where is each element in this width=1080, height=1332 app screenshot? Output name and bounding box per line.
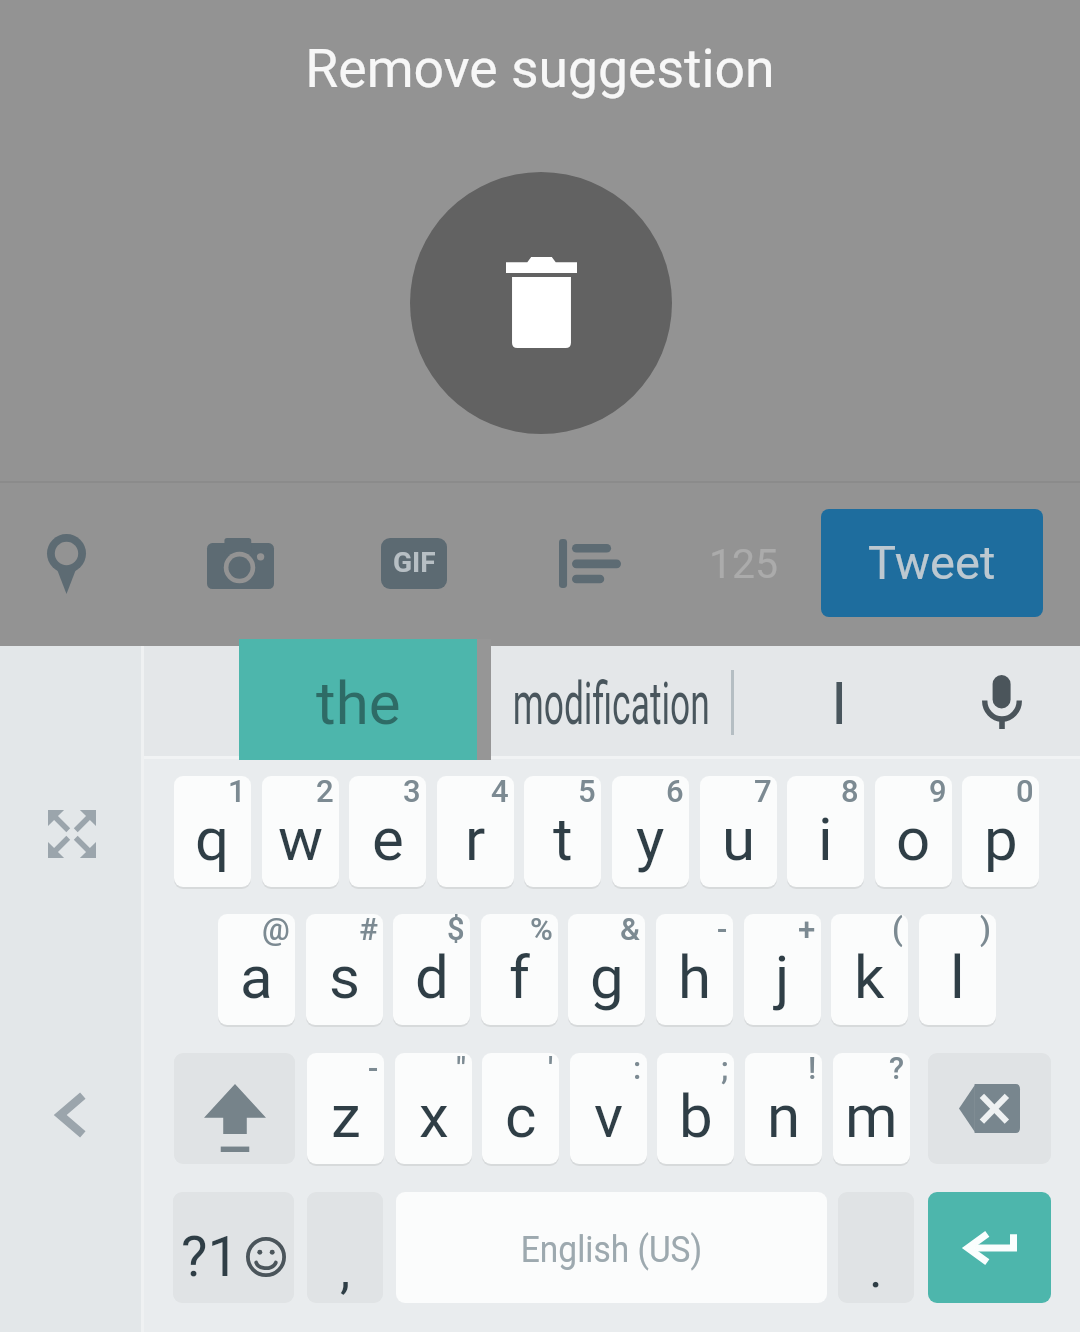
button[interactable]: # bbox=[306, 914, 383, 1025]
staticText: . bbox=[869, 1239, 883, 1300]
button[interactable]: 9 bbox=[875, 776, 952, 887]
button[interactable]: ( bbox=[831, 914, 908, 1025]
staticText: z bbox=[331, 1081, 361, 1151]
staticText: 9 bbox=[929, 776, 947, 809]
staticText: ! bbox=[808, 1053, 817, 1086]
staticText: g bbox=[590, 942, 624, 1012]
button[interactable]: ? bbox=[833, 1053, 910, 1164]
button[interactable]: GIF bbox=[369, 519, 458, 608]
button[interactable]: 5 bbox=[524, 776, 601, 887]
button[interactable]: % bbox=[481, 914, 558, 1025]
staticText: ' bbox=[548, 1053, 554, 1086]
staticText: y bbox=[636, 804, 665, 874]
staticText: - bbox=[368, 1053, 379, 1086]
button[interactable]: 6 bbox=[612, 776, 689, 887]
button[interactable]: - bbox=[656, 914, 733, 1025]
staticText: 7 bbox=[754, 776, 772, 809]
staticText: 4 bbox=[491, 776, 509, 809]
button[interactable]: English (US) bbox=[396, 1192, 827, 1303]
staticText: % bbox=[530, 914, 553, 947]
button[interactable]: I bbox=[739, 647, 939, 755]
staticText: GIF bbox=[393, 546, 436, 579]
staticText: d bbox=[415, 942, 449, 1012]
staticText: English (US) bbox=[521, 1229, 702, 1271]
staticText: l bbox=[950, 942, 965, 1012]
button[interactable]: Resize keyboard bbox=[32, 794, 112, 874]
staticText: the bbox=[316, 668, 401, 738]
button[interactable]: Tweet bbox=[821, 509, 1043, 617]
staticText: v bbox=[594, 1081, 624, 1151]
button[interactable]: Location bbox=[22, 519, 111, 608]
staticText: h bbox=[678, 942, 712, 1012]
staticText: k bbox=[854, 942, 885, 1012]
staticText: ( bbox=[892, 914, 903, 947]
staticText: u bbox=[722, 804, 756, 874]
staticText: r bbox=[465, 804, 486, 874]
staticText: 8 bbox=[841, 776, 859, 809]
button[interactable]: modification bbox=[441, 647, 781, 755]
staticText: o bbox=[896, 804, 931, 874]
button[interactable]: ) bbox=[919, 914, 996, 1025]
staticText: 3 bbox=[403, 776, 421, 809]
button[interactable]: " bbox=[395, 1053, 472, 1164]
staticText: Tweet bbox=[868, 535, 996, 590]
button[interactable]: Delete suggestion bbox=[410, 172, 672, 434]
button[interactable]: & bbox=[568, 914, 645, 1025]
button[interactable]: + bbox=[744, 914, 821, 1025]
button[interactable]: ; bbox=[657, 1053, 734, 1164]
button[interactable]: the bbox=[239, 639, 477, 760]
staticText: 1 bbox=[228, 776, 246, 809]
button[interactable]: ! bbox=[745, 1053, 822, 1164]
button[interactable]: Back bbox=[31, 1075, 111, 1155]
staticText: b bbox=[679, 1081, 713, 1151]
button[interactable]: : bbox=[570, 1053, 647, 1164]
staticText: ) bbox=[980, 914, 991, 947]
staticText: a bbox=[240, 942, 273, 1012]
button[interactable]: @ bbox=[218, 914, 295, 1025]
staticText: " bbox=[456, 1053, 467, 1086]
staticText: p bbox=[984, 804, 1018, 874]
button[interactable]: Shift bbox=[174, 1053, 295, 1164]
staticText: ; bbox=[721, 1053, 729, 1086]
staticText: j bbox=[775, 942, 790, 1012]
staticText: modification bbox=[513, 668, 710, 738]
staticText: q bbox=[195, 804, 230, 874]
button[interactable]: Camera bbox=[196, 519, 285, 608]
button[interactable]: 0 bbox=[962, 776, 1039, 887]
button[interactable]: Enter bbox=[928, 1192, 1051, 1303]
staticText: x bbox=[419, 1081, 449, 1151]
button[interactable]: Backspace bbox=[928, 1053, 1051, 1164]
staticText: ? bbox=[889, 1053, 905, 1086]
staticText: 2 bbox=[316, 776, 334, 809]
button[interactable]: 4 bbox=[437, 776, 514, 887]
staticText: 5 bbox=[578, 776, 596, 809]
staticText: s bbox=[329, 942, 360, 1012]
button[interactable]: 8 bbox=[787, 776, 864, 887]
button[interactable]: - bbox=[307, 1053, 384, 1164]
staticText: c bbox=[505, 1081, 537, 1151]
staticText: ?1 bbox=[181, 1224, 239, 1290]
staticText: i bbox=[818, 804, 833, 874]
staticText: $ bbox=[447, 914, 465, 947]
button[interactable]: $ bbox=[393, 914, 470, 1025]
button[interactable]: Voice input bbox=[957, 657, 1047, 747]
button[interactable]: Symbols and emoji bbox=[173, 1192, 294, 1303]
button[interactable]: 3 bbox=[349, 776, 426, 887]
button[interactable]: 2 bbox=[262, 776, 339, 887]
button[interactable]: 1 bbox=[174, 776, 251, 887]
staticText: @ bbox=[262, 914, 290, 947]
button[interactable]: , bbox=[307, 1192, 383, 1303]
button[interactable]: Poll bbox=[545, 519, 634, 608]
button[interactable]: . bbox=[838, 1192, 914, 1303]
staticText: 125 bbox=[709, 540, 779, 588]
staticText: 6 bbox=[666, 776, 684, 809]
button[interactable]: ' bbox=[482, 1053, 559, 1164]
staticText: w bbox=[278, 804, 324, 874]
staticText: Remove suggestion bbox=[0, 37, 1080, 100]
staticText: , bbox=[340, 1240, 351, 1301]
button[interactable]: 7 bbox=[700, 776, 777, 887]
staticText: m bbox=[845, 1081, 898, 1151]
staticText: f bbox=[509, 942, 530, 1012]
staticText: n bbox=[767, 1081, 801, 1151]
staticText: t bbox=[553, 804, 573, 874]
